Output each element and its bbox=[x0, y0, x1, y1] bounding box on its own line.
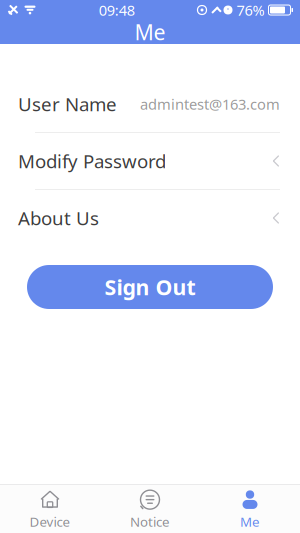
button[interactable]: User Name bbox=[0, 76, 300, 133]
staticText: 76% bbox=[236, 0, 264, 20]
staticText: Me bbox=[134, 18, 165, 46]
staticText: User Name bbox=[18, 92, 117, 116]
staticText: admintest@163.com bbox=[140, 94, 280, 114]
staticText: Sign Out bbox=[104, 273, 195, 301]
button[interactable]: About Us bbox=[0, 190, 300, 247]
button[interactable]: Notice bbox=[100, 483, 200, 533]
button[interactable]: Sign Out bbox=[27, 265, 273, 309]
staticText: Modify Password bbox=[18, 149, 166, 173]
staticText: 09:48 bbox=[99, 0, 135, 20]
staticText: Notice bbox=[130, 513, 170, 530]
staticText: Me bbox=[240, 513, 260, 530]
button[interactable]: Device bbox=[0, 483, 100, 533]
staticText: Device bbox=[29, 513, 70, 530]
staticText: About Us bbox=[18, 206, 99, 230]
button[interactable]: Modify Password bbox=[0, 133, 300, 190]
button[interactable]: Me bbox=[200, 483, 300, 533]
